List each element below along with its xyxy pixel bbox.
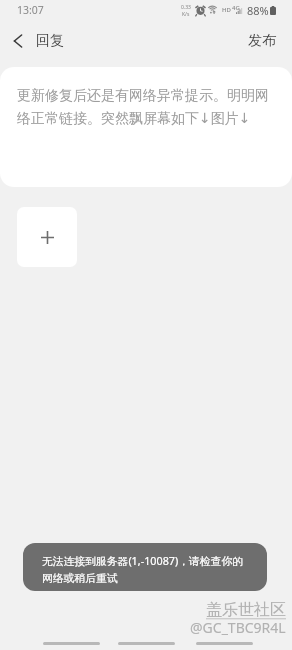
button[interactable]: Add image (17, 207, 77, 267)
staticText: 回复 (36, 32, 64, 50)
staticText: 4G (232, 4, 240, 12)
staticText: 13:07 (17, 3, 44, 17)
staticText: 0.33 (181, 4, 191, 11)
staticText: 盖乐世社区 (206, 600, 286, 620)
button[interactable]: Back (4, 27, 31, 54)
staticText: HD (222, 6, 231, 14)
button[interactable] (43, 642, 100, 645)
staticText: 发布 (248, 32, 276, 50)
staticText: 无法连接到服务器(1,-10087)，请检查你的 网络或稍后重试 (42, 553, 244, 585)
staticText: 88% (247, 3, 269, 18)
staticText: K/s (182, 11, 190, 18)
button[interactable]: 更新修复后还是有网络异常提示。明明网络正常链接。突然飘屏幕如下↓图片↓ (0, 67, 292, 187)
button[interactable]: 发布 (240, 28, 284, 53)
button[interactable] (196, 642, 253, 645)
button[interactable] (118, 642, 175, 645)
staticText: @GC_TBC9R4L (190, 618, 286, 637)
staticText: 更新修复后还是有网络异常提示。明明网络正常链接。突然飘屏幕如下↓图片↓ (17, 87, 276, 127)
